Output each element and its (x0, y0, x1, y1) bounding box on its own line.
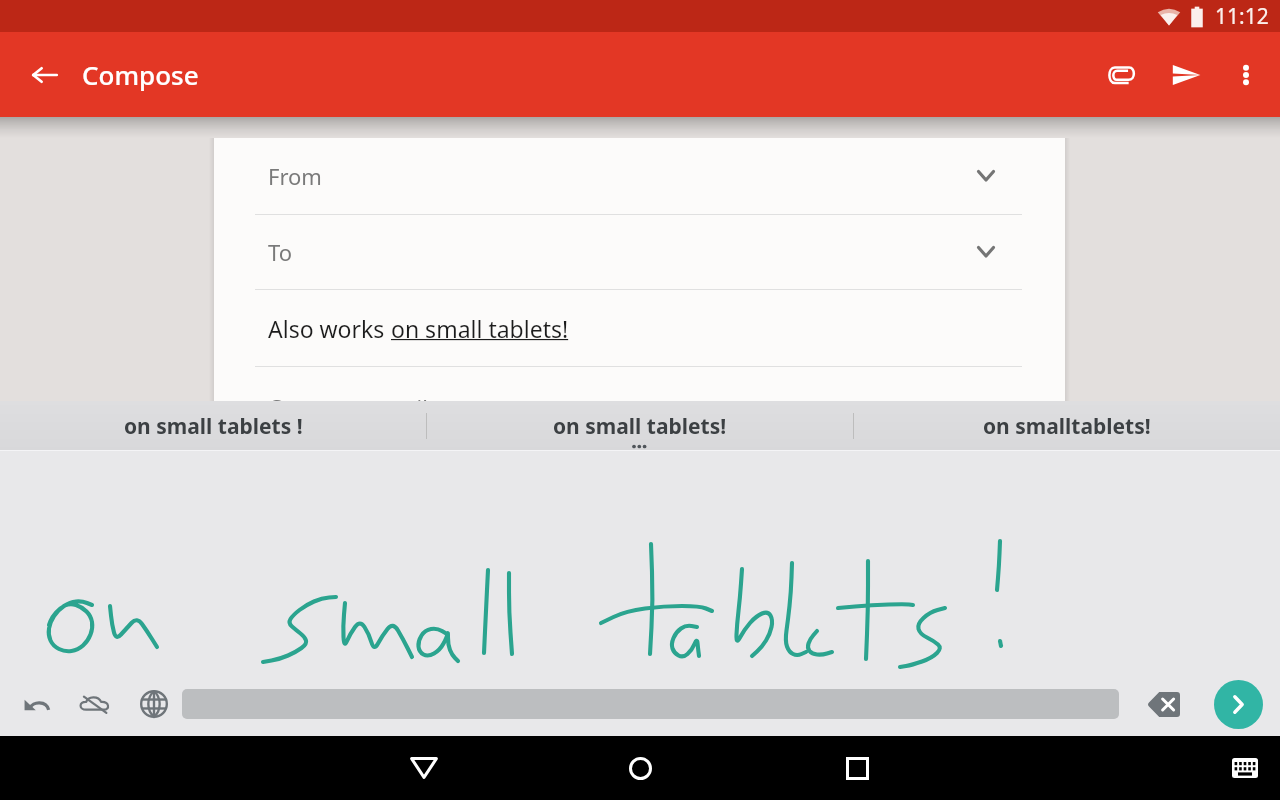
button[interactable]: Home (614, 742, 666, 794)
staticText: To (268, 237, 293, 267)
button[interactable]: To (214, 215, 1065, 289)
button[interactable]: Attach (1090, 43, 1154, 107)
button[interactable]: on small tablets! (427, 401, 853, 451)
staticText: on small tablets ! (124, 412, 303, 441)
button[interactable]: Back (398, 742, 450, 794)
staticText: 11:12 (1215, 2, 1269, 31)
staticText: on small tablets! (391, 313, 569, 344)
button[interactable]: Undo (16, 682, 60, 726)
staticText: on smalltablets! (983, 412, 1151, 441)
button[interactable]: Switch keyboard (1222, 745, 1268, 791)
button[interactable]: on smalltablets! (854, 401, 1280, 451)
button[interactable]: Also works (214, 290, 1065, 366)
button[interactable]: More options (1218, 47, 1274, 103)
button[interactable]: Back (13, 43, 77, 107)
button[interactable]: Recents (831, 742, 883, 794)
button[interactable]: Language (132, 682, 176, 726)
button[interactable]: Backspace (1145, 687, 1181, 721)
button[interactable]: Enter (1214, 680, 1263, 729)
staticText: From (268, 161, 322, 191)
staticText: Compose (82, 57, 199, 92)
staticText: Also works (268, 313, 391, 344)
staticText: on small tablets! (553, 412, 727, 441)
button[interactable]: Offline (72, 682, 116, 726)
button[interactable]: From (214, 138, 1065, 214)
staticText: Compose email (268, 392, 428, 422)
button[interactable]: Send (1154, 43, 1218, 107)
button[interactable]: on small tablets ! (0, 401, 426, 451)
